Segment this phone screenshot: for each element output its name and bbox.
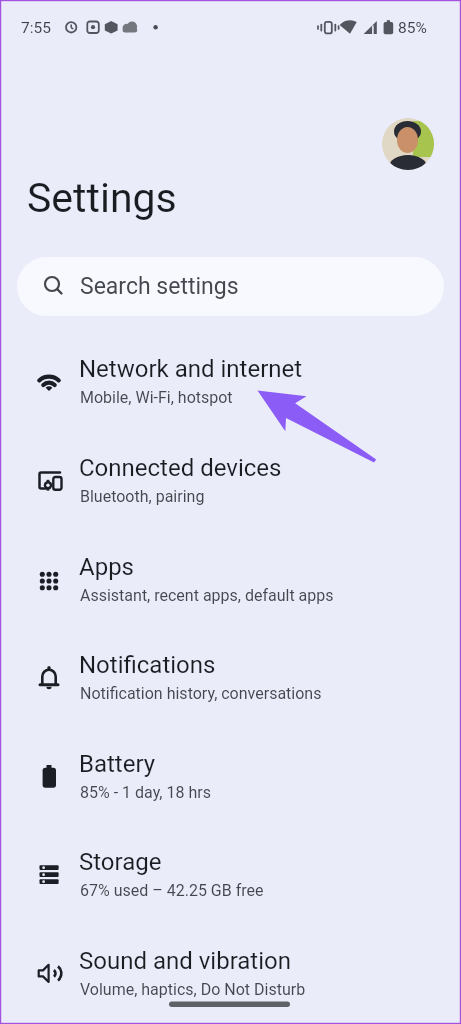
button[interactable]: Storage [0,827,461,926]
staticText: Assistant, recent apps, default apps [80,586,334,605]
button[interactable]: Apps [0,532,461,631]
staticText: Storage [79,848,162,876]
button[interactable]: Connected devices [0,433,461,532]
staticText: Notifications [79,651,216,679]
staticText: Search settings [80,273,239,300]
staticText: Volume, haptics, Do Not Disturb [80,980,306,999]
staticText: Apps [79,553,134,581]
staticText: Connected devices [79,454,282,482]
button[interactable]: Notifications [0,630,461,729]
staticText: 67% used – 42.25 GB free [80,881,264,900]
staticText: Notification history, conversations [80,684,322,703]
staticText: Settings [27,174,177,222]
button[interactable] [382,118,434,170]
staticText: 85% - 1 day, 18 hrs [80,783,211,802]
staticText: Battery [79,750,156,778]
button[interactable]: Sound and vibration [0,926,461,1024]
staticText: Bluetooth, pairing [80,487,205,506]
staticText: 85% [398,19,427,37]
staticText: Mobile, Wi-Fi, hotspot [80,388,233,407]
button[interactable]: Battery [0,729,461,828]
staticText: Sound and vibration [79,947,291,975]
button[interactable]: Search settings [17,257,444,316]
staticText: Network and internet [79,355,303,383]
staticText: 7:55 [21,19,51,37]
button[interactable]: Network and internet [0,334,461,433]
